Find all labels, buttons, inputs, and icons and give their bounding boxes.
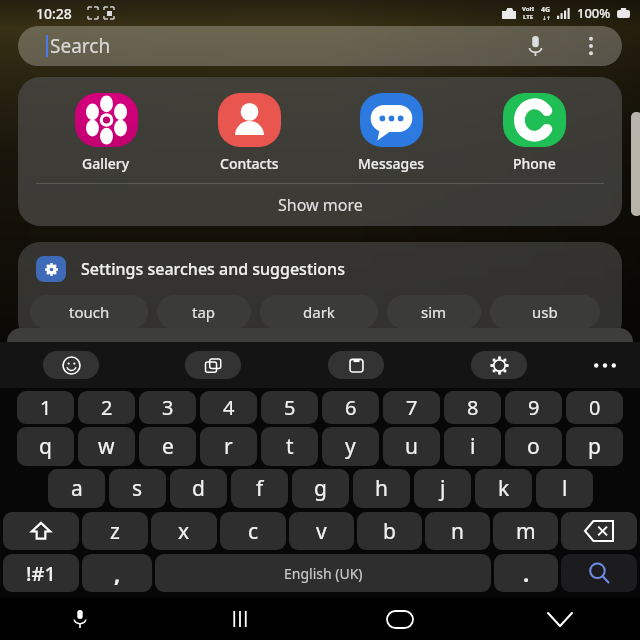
button[interactable]: Show more — [18, 184, 622, 226]
button[interactable]: Contacts — [194, 91, 304, 175]
staticText: English (UK) — [284, 564, 363, 583]
button[interactable]: Recents — [160, 598, 320, 640]
button[interactable]: Voice search — [518, 29, 552, 63]
staticText: q — [39, 432, 52, 461]
button[interactable]: Gallery — [51, 91, 161, 175]
button[interactable]: 5 — [261, 391, 318, 424]
button[interactable]: Keyboard settings — [471, 351, 527, 379]
staticText: a — [71, 474, 83, 503]
button[interactable]: 6 — [322, 391, 379, 424]
button[interactable]: u — [383, 427, 440, 466]
button[interactable]: Emoji — [43, 351, 99, 379]
staticText: e — [162, 432, 174, 461]
button[interactable]: 4 — [200, 391, 257, 424]
button[interactable]: Phone — [479, 91, 589, 175]
staticText: y — [345, 432, 356, 461]
button[interactable]: k — [475, 469, 532, 508]
staticText: LTE — [523, 13, 534, 21]
button[interactable]: Search — [18, 26, 622, 66]
staticText: 1 — [40, 394, 52, 421]
button[interactable]: Settings searches and suggestions — [36, 256, 345, 282]
staticText: dark — [303, 302, 335, 322]
staticText: 100% — [577, 4, 611, 22]
button[interactable]: d — [170, 469, 227, 508]
staticText: 0 — [589, 394, 601, 421]
button[interactable]: English (UK) — [155, 554, 491, 592]
button[interactable]: 1 — [17, 391, 74, 424]
button[interactable]: i — [444, 427, 501, 466]
button[interactable]: Home — [320, 598, 480, 640]
staticText: i — [470, 432, 476, 461]
button[interactable]: l — [536, 469, 593, 508]
button[interactable]: p — [566, 427, 623, 466]
staticText: r — [224, 432, 233, 461]
button[interactable]: usb — [490, 295, 600, 329]
staticText: g — [314, 474, 327, 503]
button[interactable]: Clipboard — [328, 351, 384, 379]
staticText: Contacts — [220, 154, 279, 173]
button[interactable]: x — [151, 512, 217, 550]
button[interactable]: Search — [561, 554, 637, 592]
staticText: Settings searches and suggestions — [81, 258, 345, 280]
staticText: !#1 — [26, 560, 56, 587]
staticText: 9 — [528, 394, 540, 421]
button[interactable]: Voice input — [0, 598, 160, 640]
button[interactable]: g — [292, 469, 349, 508]
button[interactable]: tap — [157, 295, 251, 329]
button[interactable]: o — [505, 427, 562, 466]
button[interactable]: sim — [387, 295, 481, 329]
button[interactable]: 2 — [78, 391, 135, 424]
staticText: sim — [421, 302, 447, 322]
staticText: l — [562, 474, 568, 503]
staticText: 4G — [541, 5, 551, 15]
staticText: z — [110, 517, 120, 546]
staticText: j — [440, 474, 446, 503]
button[interactable]: e — [139, 427, 196, 466]
button[interactable]: Hide keyboard — [480, 598, 640, 640]
staticText: t — [286, 432, 294, 461]
button[interactable]: 9 — [505, 391, 562, 424]
button[interactable]: Stickers — [185, 351, 241, 379]
button[interactable]: c — [220, 512, 286, 550]
button[interactable]: r — [200, 427, 257, 466]
button[interactable]: 7 — [383, 391, 440, 424]
button[interactable]: , — [82, 554, 152, 592]
button[interactable]: z — [82, 512, 148, 550]
button[interactable]: !#1 — [3, 554, 79, 592]
staticText: p — [588, 432, 601, 461]
button[interactable]: f — [231, 469, 288, 508]
button[interactable]: v — [289, 512, 354, 550]
button[interactable]: More keyboard options — [570, 342, 640, 388]
button[interactable]: s — [109, 469, 166, 508]
staticText: u — [405, 432, 418, 461]
button[interactable]: 0 — [566, 391, 623, 424]
button[interactable]: y — [322, 427, 379, 466]
button[interactable]: touch — [30, 295, 148, 329]
button[interactable]: Messages — [336, 91, 446, 175]
staticText: Messages — [358, 154, 425, 173]
button[interactable]: j — [414, 469, 471, 508]
button[interactable]: . — [494, 554, 558, 592]
button[interactable]: 3 — [139, 391, 196, 424]
button[interactable]: m — [493, 512, 558, 550]
staticText: 3 — [162, 394, 174, 421]
button[interactable]: a — [48, 469, 105, 508]
button[interactable]: More options — [574, 29, 608, 63]
button[interactable]: n — [425, 512, 490, 550]
staticText: tap — [192, 302, 216, 322]
button[interactable]: dark — [260, 295, 378, 329]
staticText: . — [523, 558, 530, 588]
button[interactable]: Backspace — [561, 512, 637, 550]
staticText: 6 — [345, 394, 357, 421]
button[interactable]: t — [261, 427, 318, 466]
button[interactable]: h — [353, 469, 410, 508]
button[interactable]: Shift — [3, 512, 79, 550]
button[interactable]: q — [17, 427, 74, 466]
staticText: m — [516, 517, 536, 546]
button[interactable]: b — [357, 512, 422, 550]
staticText: 8 — [467, 394, 479, 421]
staticText: touch — [69, 302, 110, 322]
staticText: b — [383, 517, 396, 546]
button[interactable]: 8 — [444, 391, 501, 424]
button[interactable]: w — [78, 427, 135, 466]
